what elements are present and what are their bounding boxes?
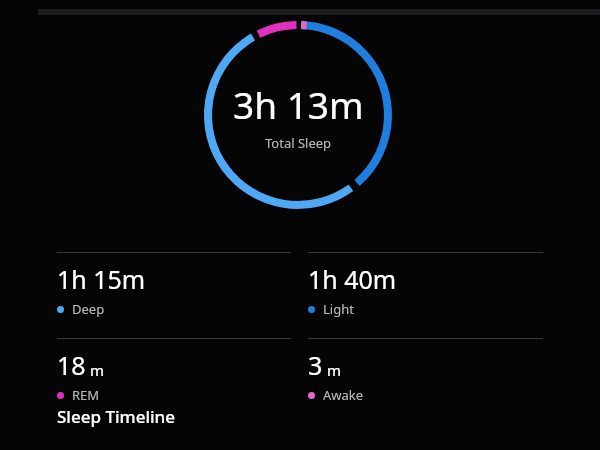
staticText: REM bbox=[72, 386, 100, 404]
staticText: 3h 13m bbox=[233, 79, 364, 129]
staticText: Total Sleep bbox=[265, 134, 332, 152]
button[interactable]: 3 bbox=[308, 338, 543, 404]
staticText: m bbox=[327, 360, 342, 380]
button[interactable]: 18 bbox=[57, 338, 291, 404]
button[interactable]: Sleep Timeline bbox=[57, 405, 176, 428]
staticText: Deep bbox=[72, 300, 105, 318]
staticText: 18 bbox=[57, 348, 86, 382]
button[interactable]: 1h 15m bbox=[57, 252, 291, 318]
staticText: Awake bbox=[323, 386, 364, 404]
staticText: Light bbox=[323, 300, 354, 318]
button[interactable]: Total sleep 3 hours 13 minutes bbox=[199, 16, 397, 214]
staticText: 3 bbox=[308, 348, 323, 382]
staticText: m bbox=[90, 360, 105, 380]
staticText: 1h 40m bbox=[308, 262, 397, 296]
button[interactable]: 1h 40m bbox=[308, 252, 543, 318]
staticText: 1h 15m bbox=[57, 262, 146, 296]
staticText: Sleep Timeline bbox=[57, 405, 176, 428]
